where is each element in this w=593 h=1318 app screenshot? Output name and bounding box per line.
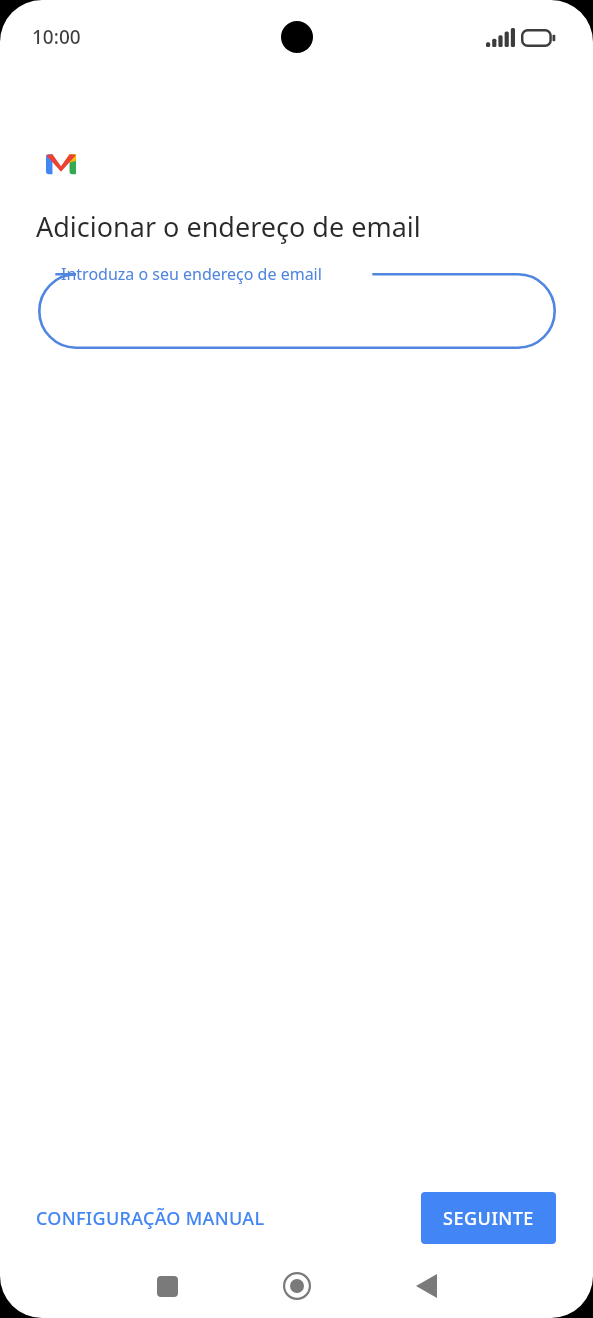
button[interactable]: Back (402, 1262, 450, 1310)
staticText: CONFIGURAÇÃO MANUAL (36, 1206, 265, 1231)
button[interactable]: Recent apps (143, 1262, 191, 1310)
button[interactable]: Introduza o seu endereço de email (38, 265, 556, 349)
staticText: SEGUINTE (443, 1206, 534, 1231)
staticText: Introduza o seu endereço de email (61, 263, 322, 285)
button[interactable]: Home (273, 1262, 321, 1310)
staticText: Adicionar o endereço de email (36, 208, 421, 245)
staticText: 10:00 (32, 24, 81, 50)
button[interactable]: CONFIGURAÇÃO MANUAL (22, 1196, 279, 1241)
button[interactable]: SEGUINTE (421, 1192, 556, 1244)
